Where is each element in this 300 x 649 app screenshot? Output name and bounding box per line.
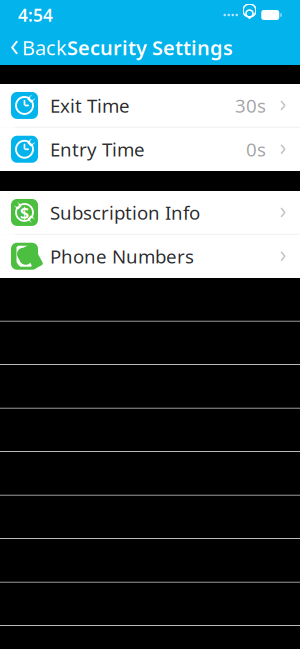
- button[interactable]: Phone Numbers: [0, 234, 300, 278]
- staticText: Exit Time: [50, 93, 130, 118]
- staticText: 30s: [235, 93, 266, 118]
- staticText: Phone Numbers: [50, 244, 194, 269]
- staticText: Security Settings: [67, 34, 233, 61]
- button[interactable]: $: [0, 191, 300, 234]
- button[interactable]: Back: [0, 28, 75, 67]
- staticText: $: [20, 202, 29, 223]
- staticText: 4:54: [18, 3, 53, 26]
- staticText: Subscription Info: [50, 200, 200, 225]
- staticText: Back: [22, 34, 67, 61]
- button[interactable]: Entry Time: [0, 127, 300, 171]
- staticText: Entry Time: [50, 137, 145, 162]
- button[interactable]: Exit Time: [0, 84, 300, 127]
- staticText: 0s: [246, 137, 266, 162]
